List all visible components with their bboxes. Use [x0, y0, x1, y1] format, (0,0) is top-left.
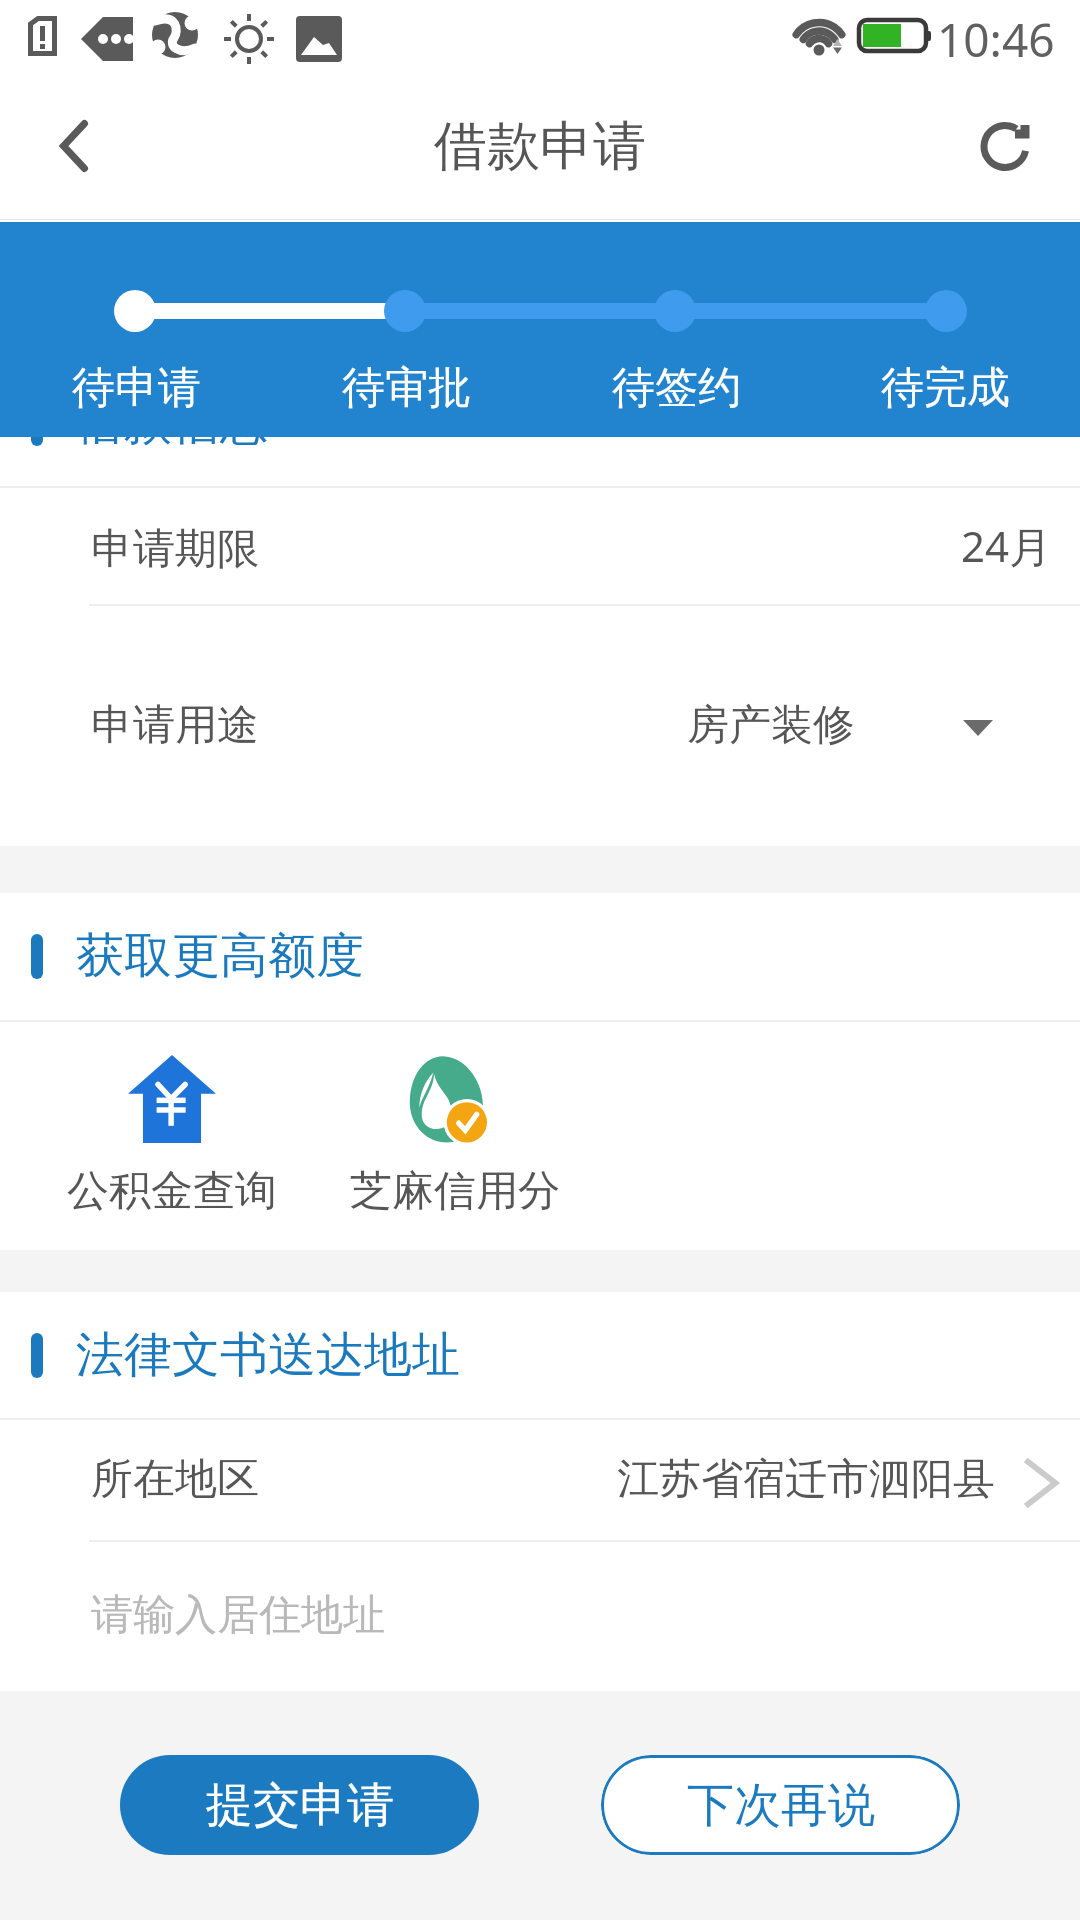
staticText: 江苏省宿迁市泗阳县 [617, 1453, 995, 1506]
button[interactable]: 所在地区 [0, 1418, 1080, 1540]
staticText: 10:46 [937, 8, 1055, 71]
staticText: 下次再说 [687, 1776, 875, 1835]
button[interactable]: 申请期限 [0, 486, 1080, 604]
button[interactable]: 申请用途 [0, 604, 1080, 846]
staticText: 待签约 [612, 361, 741, 415]
button[interactable]: 待完成 [835, 358, 1055, 418]
button[interactable]: 下次再说 [601, 1755, 960, 1855]
staticText: 房产装修 [687, 699, 855, 752]
staticText: 请输入居住地址 [91, 1589, 385, 1642]
button[interactable]: Refresh [965, 107, 1045, 187]
button[interactable]: 待审批 [296, 358, 516, 418]
staticText: 所在地区 [91, 1453, 259, 1506]
staticText: 公积金查询 [67, 1165, 277, 1218]
staticText: 借款信息 [76, 393, 268, 453]
button[interactable]: 请输入居住地址 [0, 1540, 1080, 1691]
staticText: 待完成 [881, 361, 1010, 415]
button[interactable]: 提交申请 [120, 1755, 479, 1855]
staticText: 芝麻信用分 [350, 1165, 560, 1218]
staticText: 借款申请 [0, 113, 1080, 180]
staticText: 申请用途 [91, 699, 259, 752]
staticText: 提交申请 [206, 1776, 394, 1835]
button[interactable]: 待申请 [26, 358, 246, 418]
staticText: 24月 [961, 517, 1052, 574]
button[interactable]: Back [12, 96, 122, 196]
button[interactable]: 芝麻信用分 [313, 1020, 596, 1250]
staticText: 待申请 [72, 361, 201, 415]
staticText: 待审批 [342, 361, 471, 415]
staticText: 获取更高额度 [76, 926, 364, 986]
staticText: 申请期限 [91, 523, 259, 576]
staticText: 法律文书送达地址 [76, 1325, 460, 1385]
button[interactable]: 公积金查询 [30, 1020, 313, 1250]
button[interactable]: 待签约 [566, 358, 786, 418]
